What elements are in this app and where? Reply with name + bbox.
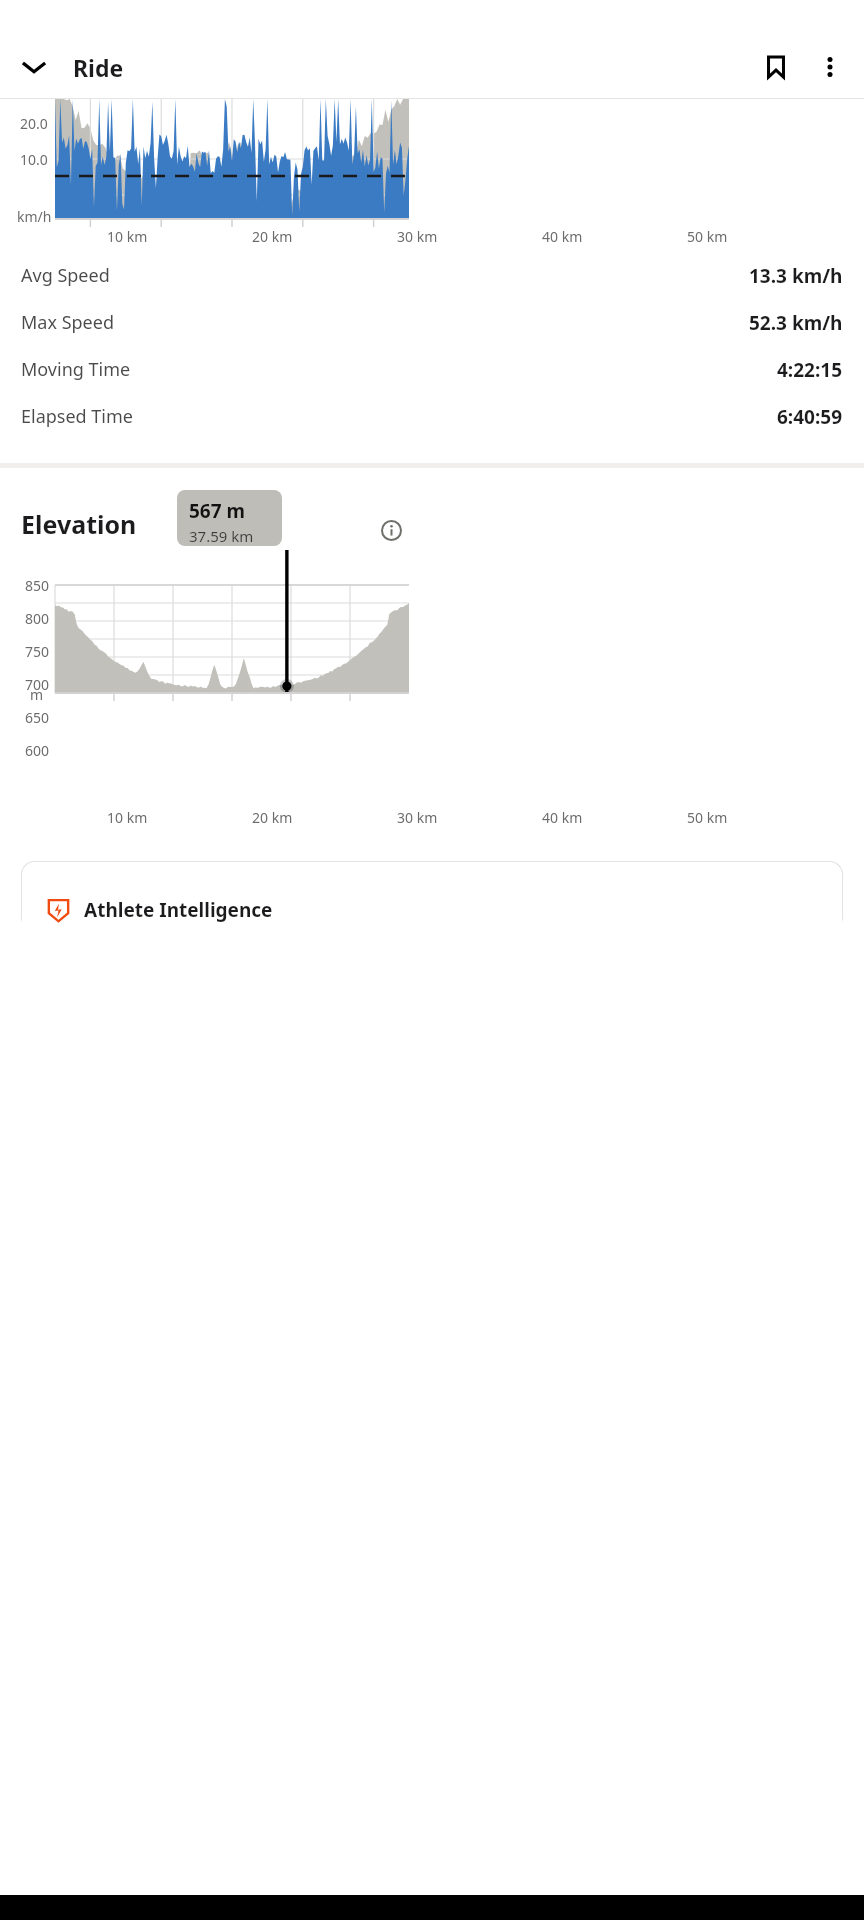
button[interactable]: Collapse — [10, 43, 58, 91]
button[interactable]: Info — [374, 513, 408, 547]
button[interactable]: Max Speed — [0, 299, 864, 346]
staticText: 850 — [21, 576, 49, 595]
staticText: 37.59 km — [189, 526, 254, 546]
staticText: 50 km — [687, 808, 728, 827]
staticText: 30 km — [397, 227, 438, 246]
staticText: 10 km — [107, 808, 148, 827]
staticText: 50 km — [687, 227, 728, 246]
button[interactable]: 567 m — [177, 490, 282, 546]
staticText: 650 — [21, 708, 49, 727]
button[interactable]: Elapsed Time — [0, 393, 864, 440]
staticText: Avg Speed — [21, 263, 110, 288]
staticText: Ride — [73, 52, 124, 83]
staticText: m — [30, 685, 44, 704]
button[interactable]: Avg Speed — [0, 252, 864, 299]
button[interactable]: Athlete Intelligence — [21, 861, 843, 931]
staticText: 40 km — [542, 808, 583, 827]
staticText: 800 — [21, 609, 49, 628]
button[interactable]: Save — [752, 43, 800, 91]
staticText: 6:40:59 — [777, 404, 843, 430]
staticText: 700 — [21, 675, 49, 694]
staticText: 30 km — [397, 808, 438, 827]
staticText: 10.0 — [20, 150, 48, 169]
staticText: 750 — [21, 642, 49, 661]
staticText: Elevation — [21, 507, 137, 541]
button[interactable]: More options — [806, 43, 854, 91]
staticText: Elapsed Time — [21, 404, 133, 429]
staticText: 52.3 km/h — [749, 310, 843, 336]
staticText: Max Speed — [21, 310, 114, 335]
staticText: 567 m — [189, 498, 246, 524]
staticText: Moving Time — [21, 357, 131, 382]
staticText: km/h — [17, 207, 52, 226]
staticText: 10 km — [107, 227, 148, 246]
staticText: 4:22:15 — [777, 357, 843, 383]
staticText: 13.3 km/h — [749, 263, 843, 289]
staticText: 40 km — [542, 227, 583, 246]
staticText: 20 km — [252, 808, 293, 827]
staticText: 20 km — [252, 227, 293, 246]
staticText: Athlete Intelligence — [84, 897, 273, 923]
button[interactable]: Moving Time — [0, 346, 864, 393]
staticText: 600 — [21, 741, 49, 760]
staticText: 20.0 — [20, 114, 48, 133]
